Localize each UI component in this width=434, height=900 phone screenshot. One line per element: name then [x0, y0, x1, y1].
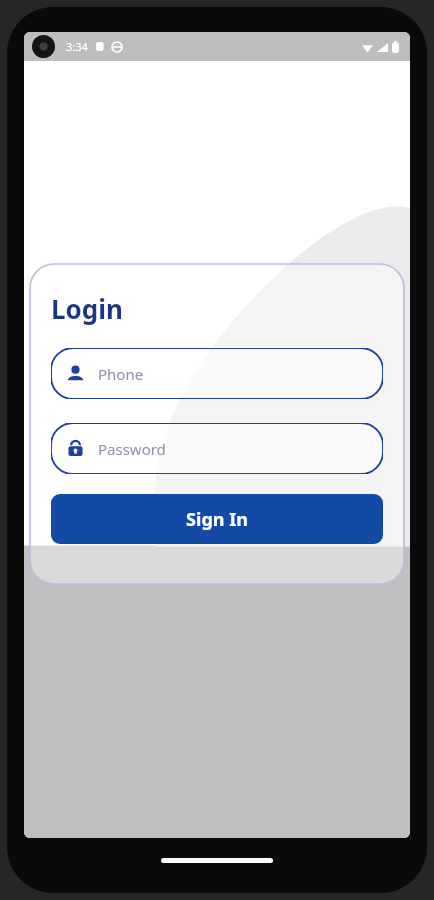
other: Password [66, 439, 85, 458]
staticText: 3:34 [66, 39, 88, 54]
staticText: Password [98, 439, 166, 459]
staticText: Login [51, 291, 123, 326]
staticText: Phone [98, 364, 144, 384]
button[interactable]: Sign In [51, 494, 383, 544]
button[interactable]: Password [51, 423, 383, 474]
other: User [66, 364, 85, 383]
button[interactable]: User [51, 348, 383, 399]
staticText: Sign In [186, 507, 248, 532]
